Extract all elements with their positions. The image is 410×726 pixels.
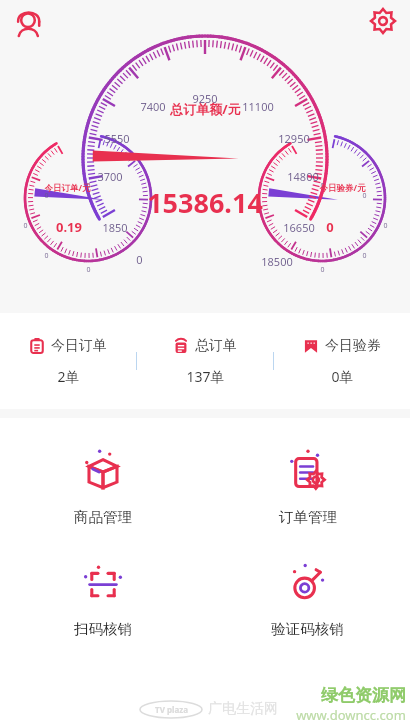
staticText: 0	[44, 191, 49, 201]
staticText: 0	[383, 221, 388, 231]
staticText: 14800	[287, 169, 319, 184]
staticText: 今日验券/元	[319, 182, 366, 194]
staticText: 0	[326, 218, 334, 236]
staticText: 0单	[331, 367, 354, 386]
staticText: 16650	[283, 220, 315, 235]
staticText: 0	[320, 265, 325, 275]
staticText: 9250	[192, 91, 218, 106]
button[interactable]: 扫码核销	[0, 550, 205, 644]
staticText: www.downcc.com	[296, 706, 406, 724]
button[interactable]: 今日订单	[0, 313, 136, 409]
staticText: 商品管理	[74, 508, 132, 526]
staticText: 5550	[104, 131, 130, 146]
staticText: 3700	[97, 169, 123, 184]
staticText: 验证码核销	[271, 620, 344, 638]
button[interactable]: 订单管理	[205, 438, 410, 532]
staticText: 扫码核销	[74, 620, 132, 638]
staticText: 0	[136, 252, 143, 267]
staticText: 今日订单	[51, 337, 107, 355]
button[interactable]: Customer service	[12, 6, 46, 40]
staticText: 0.19	[56, 218, 82, 236]
button[interactable]: Settings	[368, 6, 398, 36]
staticText: 订单管理	[279, 508, 337, 526]
button[interactable]: 验证码核销	[205, 550, 410, 644]
button[interactable]: 总订单	[137, 313, 273, 409]
staticText: 11100	[242, 99, 274, 114]
staticText: 0	[86, 265, 91, 275]
staticText: 总订单额/元	[170, 100, 241, 118]
staticText: 18500	[261, 254, 293, 269]
staticText: 0	[44, 251, 49, 261]
staticText: 0	[86, 181, 91, 191]
staticText: 绿色资源网	[321, 685, 406, 706]
staticText: 12950	[278, 131, 310, 146]
staticText: 0	[320, 181, 325, 191]
staticText: 137单	[186, 367, 225, 386]
staticText: 7400	[140, 99, 166, 114]
staticText: 总订单	[195, 337, 237, 355]
staticText: 0	[362, 191, 367, 201]
button[interactable]: 今日验券	[274, 313, 410, 409]
staticText: 今日订单/元	[44, 182, 91, 194]
staticText: 今日验券	[325, 337, 381, 355]
staticText: TV plaza	[155, 704, 188, 715]
staticText: 2单	[57, 367, 80, 386]
button[interactable]: 商品管理	[0, 438, 205, 532]
staticText: 0	[23, 221, 28, 231]
staticText: 15386.14	[147, 184, 263, 221]
staticText: 0	[362, 251, 367, 261]
staticText: 1850	[102, 220, 128, 235]
staticText: 广电生活网	[208, 700, 278, 718]
